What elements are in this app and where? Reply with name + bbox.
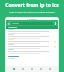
button[interactable]: Sent [39,67,43,71]
button[interactable]: Menu [7,22,10,25]
button[interactable]: More options [54,22,57,25]
staticText: With all new and easy just sweet feature… [0,10,64,13]
button[interactable]: Inbox [21,67,25,71]
button[interactable]: Star [6,39,58,44]
button[interactable]: Star [6,49,58,54]
staticText: Convert from ip to ics [0,2,64,9]
button[interactable]: Star [6,34,58,39]
button[interactable] [6,26,58,29]
button[interactable] [8,56,19,57]
button[interactable]: Settings [48,67,52,71]
button[interactable]: Starred [30,67,34,71]
button[interactable]: Star [6,29,58,34]
button[interactable]: Compose [12,67,16,71]
button[interactable]: Star [6,44,58,49]
button[interactable] [11,22,53,25]
